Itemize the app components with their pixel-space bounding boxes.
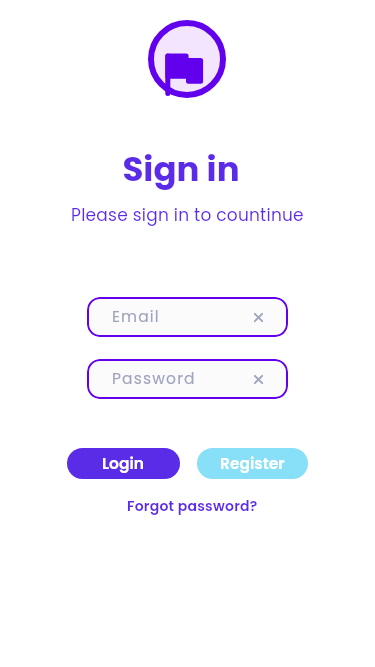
button[interactable]: Password (87, 359, 288, 399)
button[interactable]: Clear Email (250, 309, 266, 325)
button[interactable]: Clear Password (250, 371, 266, 387)
staticText: Forgot password? (127, 496, 258, 516)
button[interactable]: Forgot password? (127, 496, 258, 516)
staticText: Please sign in to countinue (71, 203, 304, 227)
staticText: Email (112, 306, 160, 328)
button[interactable]: Email (87, 297, 288, 337)
staticText: Login (102, 453, 145, 475)
staticText: Password (112, 368, 196, 390)
staticText: Register (220, 453, 285, 475)
staticText: Sign in (122, 145, 240, 193)
button[interactable]: Register (197, 448, 308, 479)
button[interactable]: Login (67, 448, 180, 479)
